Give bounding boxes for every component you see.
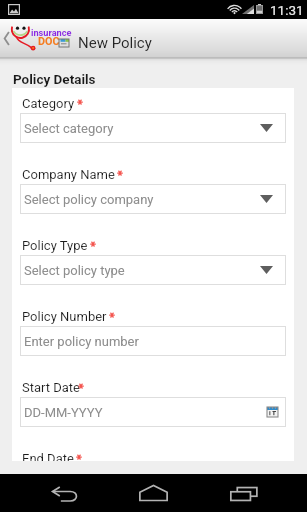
button[interactable]: Recent apps — [216, 482, 271, 506]
button[interactable]: Enter policy number — [20, 326, 286, 356]
staticText: Select category — [24, 121, 114, 136]
staticText: Select policy company — [24, 192, 154, 207]
staticText: Policy Type — [22, 238, 88, 253]
staticText: insurance — [31, 27, 72, 38]
staticText: Enter policy number — [24, 334, 139, 349]
staticText: Policy Details — [13, 71, 96, 87]
button[interactable]: Select policy company — [20, 184, 286, 214]
button[interactable]: Select policy type — [20, 255, 286, 285]
staticText: Policy Number — [22, 309, 107, 324]
staticText: Category — [22, 96, 75, 111]
staticText: Select policy type — [24, 263, 125, 278]
staticText: Start Date — [22, 380, 80, 395]
button[interactable]: Select category — [20, 113, 286, 143]
button[interactable]: DD-MM-YYYY — [20, 397, 286, 427]
button[interactable]: Home — [126, 481, 181, 505]
staticText: End Date — [22, 451, 74, 461]
staticText: New Policy — [78, 34, 152, 52]
button[interactable]: Back — [0, 19, 14, 58]
staticText: 11:31 — [270, 2, 304, 18]
staticText: DD-MM-YYYY — [24, 405, 103, 420]
button[interactable]: Back — [37, 482, 92, 506]
staticText: Company Name — [22, 167, 115, 182]
staticText: DOC — [38, 35, 60, 48]
